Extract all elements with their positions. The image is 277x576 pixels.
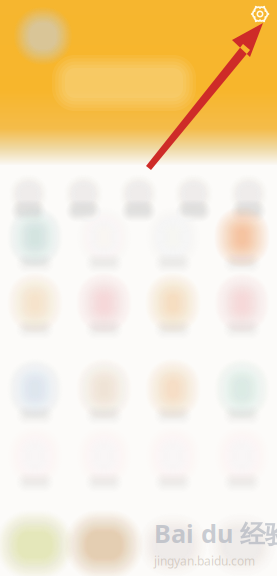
button[interactable]: Shortcut	[207, 210, 276, 276]
staticText: Bai du 经验	[154, 516, 277, 551]
button[interactable]: Shortcut	[56, 176, 111, 222]
button[interactable]: Shortcut	[69, 429, 138, 495]
button[interactable]: Shortcut	[166, 176, 221, 222]
button[interactable]: Shortcut	[138, 362, 207, 428]
button[interactable]: Shortcut	[207, 429, 276, 495]
button[interactable]: Shortcut	[111, 176, 166, 222]
staticText: jingyan.baidu.com	[154, 553, 255, 569]
button[interactable]: Shortcut	[207, 276, 276, 342]
button[interactable]: Shortcut	[138, 429, 207, 495]
button[interactable]: Shortcut	[0, 210, 69, 276]
button[interactable]: Shortcut	[138, 210, 207, 276]
button[interactable]: Shortcut	[69, 362, 138, 428]
button[interactable]: Shortcut	[221, 176, 276, 222]
button[interactable]: Shortcut	[0, 276, 69, 342]
button[interactable]: Shortcut	[0, 362, 69, 428]
button[interactable]: Shortcut	[1, 176, 56, 222]
button[interactable]: Settings	[248, 2, 272, 26]
button[interactable]: Shortcut	[69, 210, 138, 276]
button[interactable]: Shortcut	[207, 362, 276, 428]
button[interactable]: Shortcut	[138, 276, 207, 342]
button[interactable]: Shortcut	[69, 276, 138, 342]
button[interactable]: Shortcut	[0, 429, 69, 495]
